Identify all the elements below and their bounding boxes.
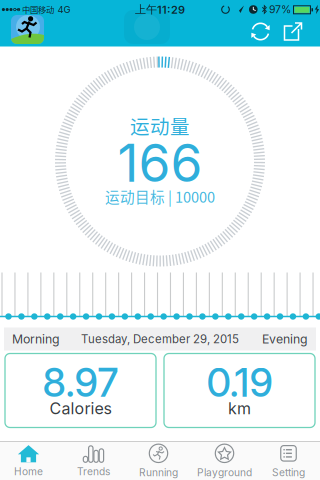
staticText: Tuesday, December 29, 2015 (81, 332, 239, 346)
staticText: 166 (117, 132, 202, 194)
staticText: 上午11:29 (135, 3, 185, 16)
staticText: Morning (12, 332, 60, 346)
staticText: Home (14, 465, 43, 478)
staticText: 0.19 (206, 359, 272, 406)
button[interactable]: Refresh (249, 20, 271, 42)
staticText: Running (139, 466, 178, 479)
staticText: Calories (49, 399, 111, 418)
staticText: Evening (262, 332, 308, 346)
staticText: 8.97 (42, 359, 118, 406)
staticText: Setting (272, 466, 305, 479)
staticText: 运动量 (130, 111, 190, 140)
button[interactable]: Trends (61, 443, 125, 479)
staticText: Playground (197, 466, 252, 479)
staticText: Trends (77, 465, 110, 478)
staticText: 4G (57, 4, 70, 15)
staticText: km (228, 399, 251, 418)
staticText: 中国移动 (22, 3, 54, 15)
button[interactable]: Playground (192, 443, 256, 479)
button[interactable]: Setting (256, 443, 320, 479)
button[interactable]: Share (283, 20, 304, 42)
button[interactable]: Running (126, 443, 190, 479)
button[interactable]: Home (0, 443, 60, 479)
staticText: 97% (269, 3, 291, 16)
staticText: 运动目标 | 10000 (105, 186, 215, 207)
